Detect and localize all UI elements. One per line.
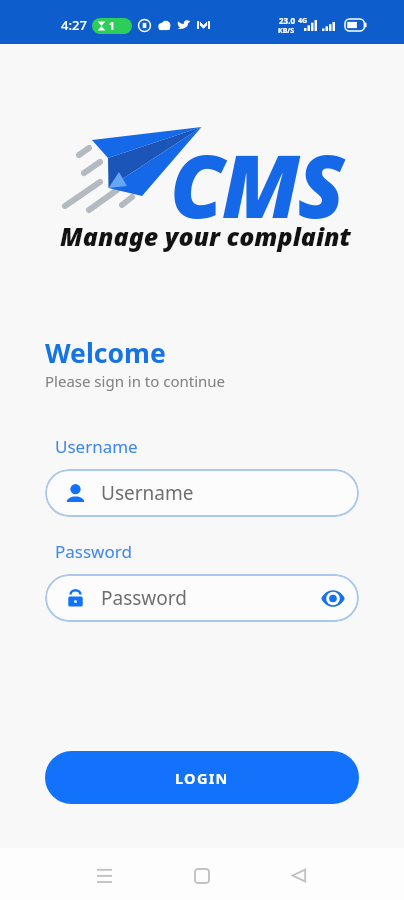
staticText: LOGIN	[175, 768, 229, 788]
staticText: KB/S	[278, 26, 295, 36]
staticText: CMS	[170, 126, 343, 243]
staticText: 1	[109, 19, 115, 33]
staticText: 23.0	[279, 15, 295, 26]
staticText: Password	[101, 585, 187, 611]
button[interactable]: Back	[275, 852, 322, 899]
staticText: 4G	[298, 16, 308, 26]
button[interactable]: Show password	[319, 584, 347, 612]
staticText: Password	[55, 540, 132, 563]
staticText: Welcome	[45, 335, 166, 371]
button[interactable]: Username	[45, 469, 359, 517]
button[interactable]: Password	[45, 574, 359, 622]
staticText: Username	[55, 435, 138, 458]
staticText: Manage your complaint	[60, 219, 352, 253]
button[interactable]: Recents	[81, 852, 128, 899]
button[interactable]: Home	[178, 852, 225, 899]
button[interactable]: LOGIN	[45, 751, 359, 804]
staticText: Username	[101, 480, 194, 506]
staticText: Please sign in to continue	[45, 371, 226, 391]
staticText: 4:27	[61, 16, 87, 34]
